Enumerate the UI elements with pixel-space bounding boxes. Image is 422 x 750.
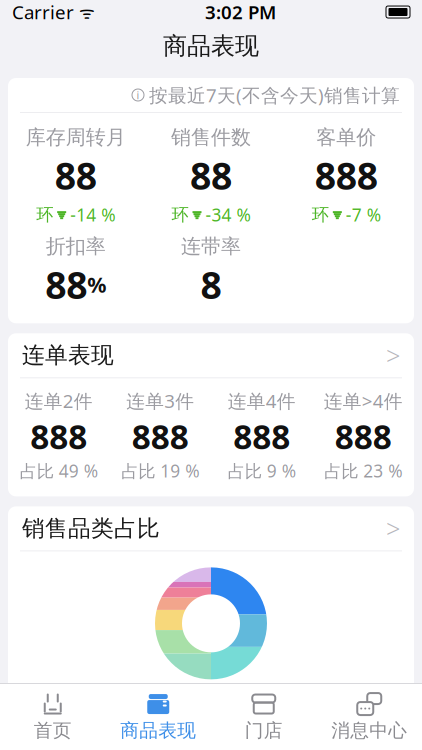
staticText: 14 % bbox=[354, 693, 397, 718]
staticText: -34 % bbox=[205, 203, 250, 226]
staticText: 连单4件 bbox=[228, 388, 296, 413]
staticText: 88 bbox=[45, 260, 87, 309]
staticText: 占比 9 % bbox=[228, 459, 296, 482]
button[interactable]: 消息中心 bbox=[316, 686, 422, 748]
staticText: 8 bbox=[200, 260, 221, 309]
staticText: > bbox=[386, 512, 400, 545]
staticText: 首页 bbox=[34, 719, 72, 742]
staticText: ᯤ bbox=[74, 0, 95, 23]
staticText: > bbox=[386, 338, 400, 372]
staticText: 门店 bbox=[245, 719, 283, 742]
staticText: 商品表现 bbox=[120, 719, 196, 742]
staticText: 占比 19 % bbox=[121, 459, 199, 482]
staticText: 连单2件 bbox=[25, 388, 93, 413]
staticText: 衬衣 bbox=[41, 694, 79, 717]
staticText: 客单价 bbox=[316, 125, 376, 150]
staticText: 环 bbox=[36, 204, 53, 225]
button[interactable]: 商品表现 bbox=[105, 686, 211, 748]
staticText: 占比 23 % bbox=[324, 459, 402, 482]
staticText: -7 % bbox=[346, 203, 381, 226]
staticText: i bbox=[136, 88, 139, 102]
button[interactable]: 销售品类占比 bbox=[8, 506, 414, 550]
staticText: 888 bbox=[315, 151, 378, 200]
button[interactable]: 连单表现 bbox=[8, 333, 414, 377]
staticText: 88 bbox=[55, 151, 97, 200]
staticText: 销售品类占比 bbox=[22, 514, 160, 542]
staticText: 按最近7天(不含今天)销售计算 bbox=[149, 83, 400, 107]
staticText: 环 bbox=[171, 204, 188, 225]
staticText: 连单3件 bbox=[126, 388, 194, 413]
staticText: 888 bbox=[335, 414, 392, 458]
staticText: 销售件数 bbox=[171, 125, 251, 150]
staticText: % bbox=[87, 270, 106, 299]
staticText: 环 bbox=[312, 204, 329, 225]
staticText: 888 bbox=[30, 414, 87, 458]
staticText: 商品表现 bbox=[163, 31, 259, 61]
staticText: 88 bbox=[190, 151, 232, 200]
staticText: 占比 49 % bbox=[20, 459, 98, 482]
staticText: 折扣率 bbox=[46, 234, 106, 259]
staticText: -14 % bbox=[70, 203, 115, 226]
staticText: 连单表现 bbox=[22, 341, 114, 369]
staticText: 消息中心 bbox=[331, 719, 407, 742]
staticText: 3:02 PM bbox=[205, 0, 276, 24]
staticText: 针织衫 bbox=[157, 694, 214, 717]
staticText: 库存周转月 bbox=[26, 125, 126, 150]
staticText: 连单>4件 bbox=[324, 388, 403, 413]
staticText: 连带率 bbox=[181, 234, 241, 259]
staticText: 888 bbox=[132, 414, 189, 458]
staticText: 888 bbox=[233, 414, 290, 458]
button[interactable]: 门店 bbox=[211, 686, 316, 748]
staticText: Carrier bbox=[12, 0, 74, 24]
staticText: 17 % bbox=[219, 693, 262, 718]
button[interactable]: 首页 bbox=[0, 686, 105, 748]
